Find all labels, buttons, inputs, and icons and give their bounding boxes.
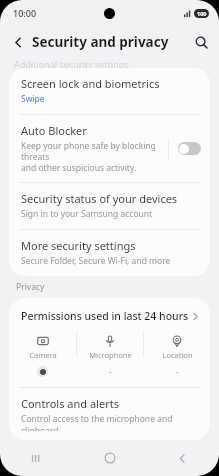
staticText: - <box>176 366 179 377</box>
staticText: Additional security settings <box>14 58 129 68</box>
button[interactable]: Back <box>146 440 219 476</box>
staticText: Security status of your devices <box>21 191 178 206</box>
button[interactable]: Home <box>73 440 146 476</box>
staticText: Microphone <box>89 350 132 360</box>
staticText: More security settings <box>21 238 136 253</box>
button[interactable]: Security status of your devices <box>9 183 210 229</box>
staticText: 100 <box>197 10 207 17</box>
staticText: Controls and alerts <box>21 396 119 411</box>
staticText: Keep your phone safe by blocking threats… <box>21 140 168 173</box>
button[interactable]: Recent apps <box>0 440 73 476</box>
button[interactable]: Back <box>6 30 30 54</box>
staticText: Permissions used in last 24 hours <box>21 309 191 323</box>
staticText: Sign in to your Samsung account <box>21 208 153 220</box>
button[interactable]: Camera <box>9 331 76 377</box>
staticText: 10:00 <box>13 7 37 19</box>
staticText: Security and privacy <box>32 33 169 51</box>
staticText: Camera <box>29 350 57 360</box>
staticText: Swipe <box>21 93 45 105</box>
staticText: Screen lock and biometrics <box>21 76 160 91</box>
button[interactable]: Search <box>189 30 213 54</box>
staticText: Secure Folder, Secure Wi-Fi, and more <box>21 255 171 267</box>
button[interactable]: Controls and alerts <box>9 388 210 440</box>
button[interactable]: Auto Blocker toggle <box>178 142 201 155</box>
button[interactable]: Permissions used in last 24 hours <box>9 298 210 331</box>
staticText: Auto Blocker <box>21 123 87 138</box>
button[interactable]: Auto Blocker <box>9 115 210 182</box>
staticText: - <box>109 366 112 377</box>
staticText: Privacy <box>16 281 45 293</box>
staticText: Location <box>162 350 193 360</box>
staticText: Control access to the microphone and cli… <box>21 413 198 431</box>
button[interactable]: Screen lock and biometrics <box>9 68 210 114</box>
button[interactable]: More security settings <box>9 230 210 276</box>
button[interactable]: Location <box>144 331 210 377</box>
button[interactable]: Microphone <box>77 331 143 377</box>
